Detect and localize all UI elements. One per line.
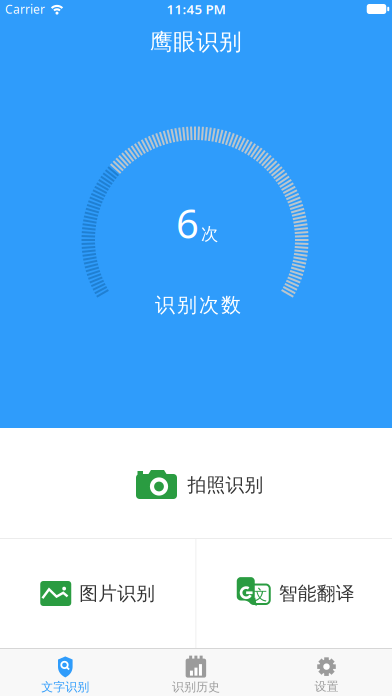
button[interactable]: 设置 [261,648,392,696]
staticText: 文字识别 [41,680,89,694]
button[interactable]: 拍照识别 [0,428,392,538]
button[interactable]: 文字识别 [0,648,131,696]
staticText: 拍照识别 [187,473,263,496]
staticText: 6 [176,196,199,249]
staticText: 识别历史 [172,680,220,694]
staticText: Carrier [5,1,45,17]
staticText: 文 [253,586,268,604]
staticText: 图片识别 [79,582,155,605]
button[interactable]: 图片识别 [0,539,195,648]
staticText: 鹰眼识别 [150,28,242,56]
button[interactable]: 识别历史 [131,648,261,696]
staticText: 11:45 PM [166,0,225,18]
staticText: 智能翻译 [279,582,355,605]
staticText: 设置 [314,679,338,694]
staticText: 次 [201,223,218,245]
button[interactable]: 文 [196,539,392,648]
staticText: 识别次数 [155,293,241,317]
